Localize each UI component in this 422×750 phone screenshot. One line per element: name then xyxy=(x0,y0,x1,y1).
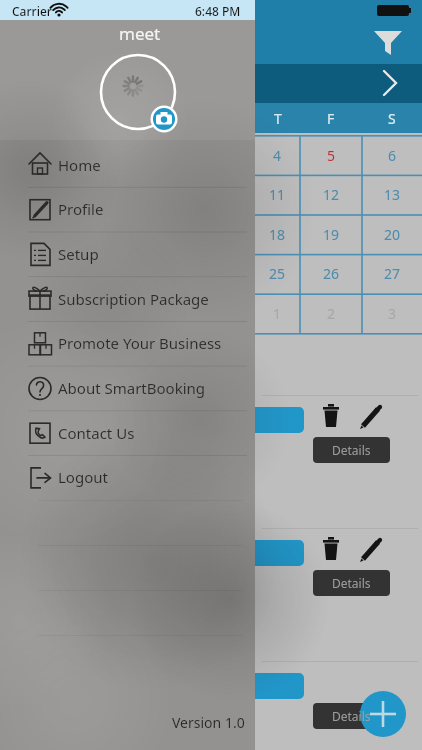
button[interactable]: Details xyxy=(313,437,390,463)
staticText: 2 xyxy=(327,304,336,323)
button[interactable]: Details xyxy=(313,703,390,729)
staticText: Version 1.0 xyxy=(172,713,245,732)
button[interactable]: 2 xyxy=(300,294,362,332)
staticText: 6:48 PM xyxy=(195,3,241,19)
button[interactable]: Delete xyxy=(318,404,346,432)
button[interactable]: Home xyxy=(0,143,255,187)
button[interactable]: About SmartBooking xyxy=(0,366,255,410)
button[interactable]: Details xyxy=(313,570,390,596)
button[interactable]: Profile xyxy=(0,187,255,231)
button[interactable]: 25 xyxy=(255,254,300,292)
button[interactable]: Change profile photo xyxy=(99,53,177,131)
staticText: meet xyxy=(119,22,161,45)
staticText: 18 xyxy=(269,225,286,244)
staticText: 27 xyxy=(384,264,401,283)
button[interactable]: Filter xyxy=(372,22,412,62)
staticText: 20 xyxy=(384,225,401,244)
button[interactable]: 4 xyxy=(255,136,300,174)
button[interactable]: Delete xyxy=(318,537,346,565)
staticText: Setup xyxy=(58,244,99,264)
staticText: 6 xyxy=(388,146,397,165)
staticText: 3 xyxy=(388,304,397,323)
button[interactable]: Edit xyxy=(358,536,386,564)
staticText: T xyxy=(274,109,282,128)
staticText: Details xyxy=(332,575,371,591)
staticText: 19 xyxy=(323,225,340,244)
button[interactable]: Logout xyxy=(0,455,255,499)
staticText: Home xyxy=(58,155,101,175)
staticText: Profile xyxy=(58,199,104,219)
button[interactable]: 1 xyxy=(255,294,300,332)
button[interactable]: Contact Us xyxy=(0,411,255,455)
button[interactable]: 18 xyxy=(255,215,300,253)
staticText: 5 xyxy=(327,146,336,165)
button[interactable]: 13 xyxy=(362,175,422,213)
staticText: 13 xyxy=(384,185,401,204)
button[interactable]: 12 xyxy=(300,175,362,213)
staticText: F xyxy=(327,109,335,128)
button[interactable]: Promote Your Business xyxy=(0,321,255,365)
button[interactable]: 5 xyxy=(300,136,362,174)
staticText: 25 xyxy=(269,264,286,283)
button[interactable]: Next month xyxy=(372,64,416,103)
staticText: 1 xyxy=(273,304,282,323)
staticText: Logout xyxy=(58,467,108,487)
staticText: 4 xyxy=(273,146,282,165)
staticText: Details xyxy=(332,442,371,458)
staticText: 26 xyxy=(323,264,340,283)
button[interactable]: Subscription Package xyxy=(0,277,255,321)
staticText: Contact Us xyxy=(58,423,135,443)
button[interactable]: Edit xyxy=(358,403,386,431)
button[interactable]: 19 xyxy=(300,215,362,253)
button[interactable]: 11 xyxy=(255,175,300,213)
staticText: S xyxy=(388,109,396,128)
staticText: About SmartBooking xyxy=(58,378,206,398)
staticText: Details xyxy=(332,708,371,724)
staticText: 12 xyxy=(323,185,340,204)
button[interactable]: 27 xyxy=(362,254,422,292)
staticText: 11 xyxy=(269,185,286,204)
button[interactable]: 20 xyxy=(362,215,422,253)
button[interactable]: 6 xyxy=(362,136,422,174)
staticText: Carrier xyxy=(12,3,52,19)
button[interactable]: 3 xyxy=(362,294,422,332)
button[interactable]: Setup xyxy=(0,232,255,276)
staticText: Subscription Package xyxy=(58,289,209,309)
button[interactable]: Add booking xyxy=(360,691,406,737)
staticText: Promote Your Business xyxy=(58,333,222,353)
button[interactable]: 26 xyxy=(300,254,362,292)
